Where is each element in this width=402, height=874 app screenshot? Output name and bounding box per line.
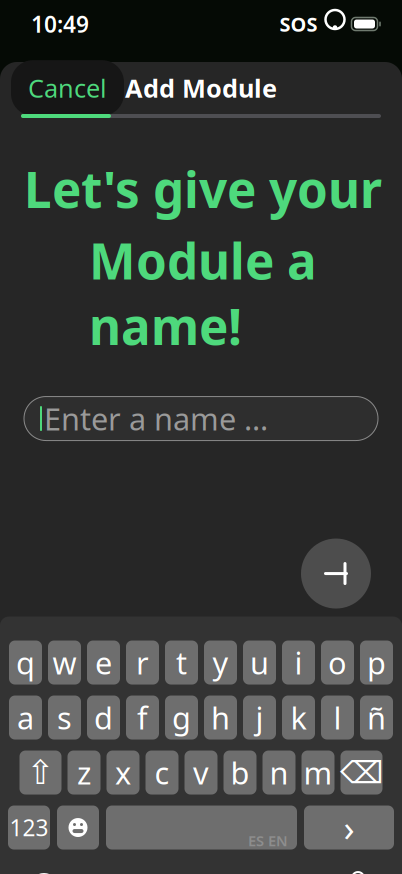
button[interactable]: j <box>243 695 276 739</box>
button[interactable]: u <box>243 640 276 684</box>
button[interactable]: Next keyboard <box>22 867 66 874</box>
button[interactable]: b <box>223 750 256 794</box>
button[interactable]: l <box>321 695 354 739</box>
button[interactable]: i <box>282 640 315 684</box>
button[interactable]: h <box>204 695 237 739</box>
staticText: b <box>230 752 249 793</box>
staticText: g <box>172 697 191 738</box>
staticText: 10:49 <box>31 9 89 39</box>
staticText: ñ <box>367 697 386 738</box>
staticText: Cancel <box>28 71 107 105</box>
button[interactable]: n <box>262 750 295 794</box>
button[interactable]: e <box>87 640 120 684</box>
button[interactable]: ñ <box>360 695 393 739</box>
staticText: x <box>115 752 131 793</box>
staticText: l <box>333 697 341 738</box>
staticText: n <box>269 752 288 793</box>
staticText: 123 <box>9 812 48 843</box>
staticText: c <box>154 752 169 793</box>
staticText: Add Module <box>125 71 277 105</box>
staticText: j <box>255 697 263 738</box>
button[interactable]: r <box>126 640 159 684</box>
staticText: o <box>328 642 347 683</box>
button[interactable]: c <box>145 750 178 794</box>
button[interactable]: q <box>9 640 42 684</box>
button[interactable]: w <box>48 640 81 684</box>
staticText: z <box>77 752 91 793</box>
staticText: m <box>303 752 332 793</box>
staticText: f <box>137 697 148 738</box>
staticText: q <box>16 642 35 683</box>
button[interactable]: f <box>126 695 159 739</box>
staticText: r <box>136 642 149 683</box>
staticText: w <box>52 642 76 683</box>
button[interactable]: Space <box>106 805 297 849</box>
staticText: ⇧ <box>26 754 54 791</box>
button[interactable]: Shift <box>19 750 61 794</box>
staticText: Module a name! <box>89 227 317 358</box>
button[interactable]: Delete <box>340 750 382 794</box>
button[interactable]: Next <box>301 538 371 608</box>
staticText: t <box>176 642 187 683</box>
staticText: SOS <box>279 11 317 37</box>
button[interactable]: t <box>165 640 198 684</box>
staticText: p <box>367 642 386 683</box>
staticText: ⌫ <box>340 755 383 790</box>
button[interactable]: v <box>184 750 217 794</box>
button[interactable]: 123 <box>8 805 50 849</box>
button[interactable]: g <box>165 695 198 739</box>
button[interactable]: Dictate <box>336 867 380 874</box>
button[interactable]: x <box>106 750 139 794</box>
staticText: e <box>95 642 112 683</box>
staticText: Let's give your <box>24 156 382 221</box>
staticText: a <box>17 697 34 738</box>
staticText: k <box>290 697 306 738</box>
button[interactable]: d <box>87 695 120 739</box>
staticText: Enter a name ... <box>44 398 268 439</box>
button[interactable]: k <box>282 695 315 739</box>
button[interactable]: z <box>67 750 100 794</box>
staticText: y <box>212 642 228 683</box>
staticText: ES EN <box>248 831 288 850</box>
button[interactable]: p <box>360 640 393 684</box>
staticText: i <box>294 642 302 683</box>
staticText: s <box>57 697 72 738</box>
button[interactable]: Return <box>304 805 394 849</box>
button[interactable]: Emoji <box>57 805 99 849</box>
button[interactable]: a <box>9 695 42 739</box>
button[interactable]: o <box>321 640 354 684</box>
staticText: u <box>250 642 269 683</box>
staticText: d <box>94 697 113 738</box>
staticText: › <box>343 804 354 851</box>
staticText: h <box>211 697 230 738</box>
button[interactable]: m <box>301 750 334 794</box>
staticText: v <box>193 752 209 793</box>
button[interactable]: y <box>204 640 237 684</box>
button[interactable]: s <box>48 695 81 739</box>
button[interactable]: Cancel <box>11 60 124 116</box>
